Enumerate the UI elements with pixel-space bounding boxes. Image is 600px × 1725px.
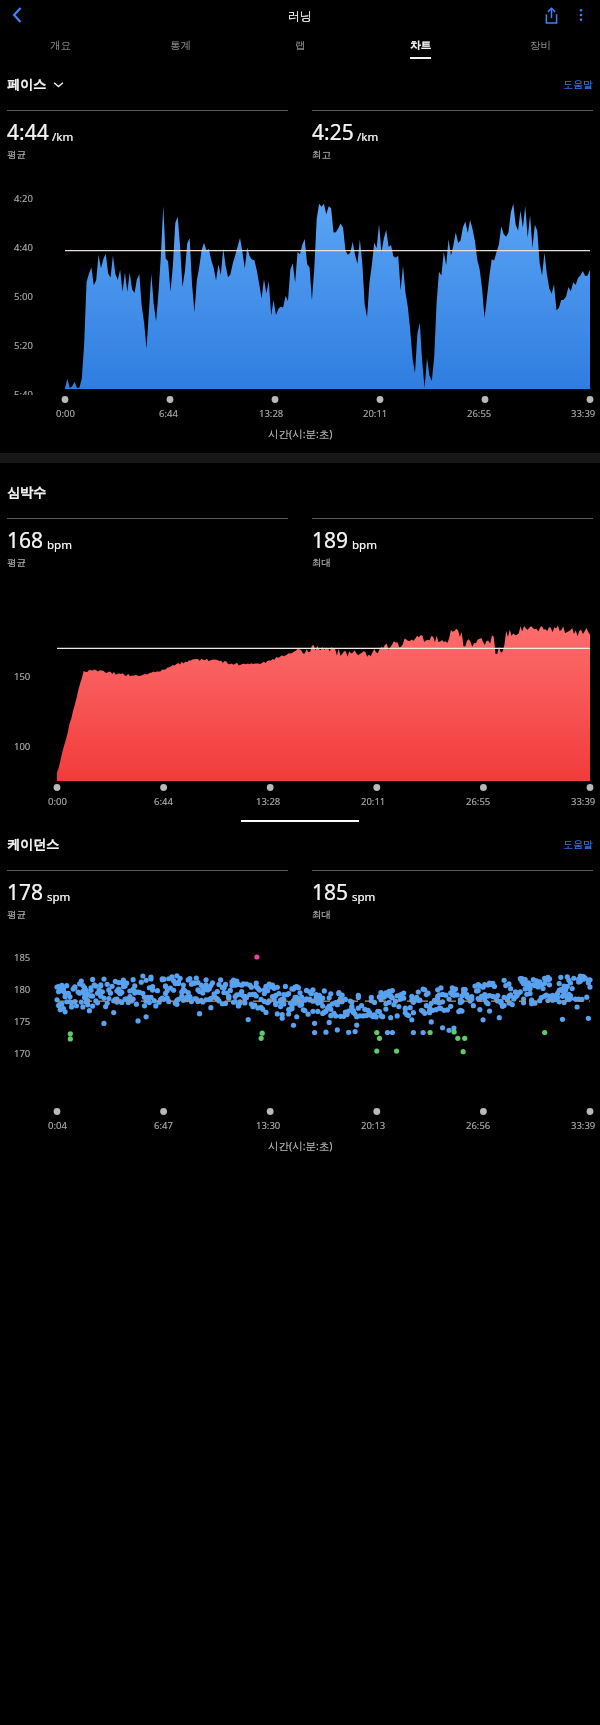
staticText: 도움말 [563,78,593,91]
staticText: 랩 [295,39,306,52]
staticText: 4:25 [312,118,354,147]
staticText: 20:11 [363,407,388,420]
staticText: bpm [352,537,377,553]
button[interactable]: 장비 [480,30,600,67]
staticText: 최대 [312,909,331,921]
staticText: 5:00 [14,290,33,303]
staticText: 26:56 [466,1119,491,1132]
staticText: /km [52,129,74,145]
staticText: 최고 [312,149,331,161]
staticText: 170 [14,1047,31,1060]
button[interactable]: 심박수 [7,484,46,500]
staticText: 통계 [170,39,191,52]
staticText: 러닝 [288,8,312,23]
staticText: 차트 [410,39,431,52]
staticText: spm [47,889,71,905]
staticText: 168 [7,526,44,555]
staticText: 4:40 [14,241,33,254]
button[interactable]: 도움말 [563,838,593,851]
staticText: 33:39 [571,795,596,808]
button[interactable]: 랩 [240,30,360,67]
staticText: 100 [14,740,31,753]
staticText: 180 [14,983,31,996]
button[interactable]: Back [4,1,32,29]
staticText: 33:39 [571,407,596,420]
staticText: 4:44 [7,118,49,147]
staticText: 185 [14,951,31,964]
staticText: 13:30 [256,1119,281,1132]
staticText: 20:11 [361,795,386,808]
button[interactable]: 페이스 [7,76,64,92]
staticText: 평균 [7,557,26,569]
staticText: 개요 [50,39,71,52]
staticText: 심박수 [7,484,46,500]
staticText: 평균 [7,149,26,161]
staticText: 장비 [530,39,551,52]
staticText: 6:44 [154,795,173,808]
button[interactable]: 케이던스 [7,836,59,852]
staticText: 13:28 [259,407,284,420]
button[interactable]: 도움말 [563,78,593,91]
staticText: 33:39 [571,1119,596,1132]
staticText: bpm [47,537,72,553]
staticText: spm [352,889,376,905]
staticText: 189 [312,526,349,555]
staticText: 평균 [7,909,26,921]
staticText: 최대 [312,557,331,569]
staticText: 26:55 [466,795,491,808]
staticText: 도움말 [563,838,593,851]
staticText: 26:55 [467,407,492,420]
staticText: 5:40 [14,388,33,395]
staticText: 185 [312,878,349,907]
staticText: 시간(시:분:초) [268,427,333,441]
staticText: 케이던스 [7,836,59,852]
staticText: 시간(시:분:초) [268,1139,333,1153]
staticText: 0:00 [48,795,67,808]
button[interactable]: 개요 [0,30,120,67]
button[interactable]: More options [566,0,596,30]
staticText: 페이스 [7,76,46,92]
staticText: /km [357,129,379,145]
staticText: 150 [14,670,31,683]
staticText: 5:20 [14,339,33,352]
staticText: 175 [14,1015,31,1028]
staticText: 13:28 [256,795,281,808]
staticText: 4:20 [14,192,33,205]
staticText: 0:04 [48,1119,67,1132]
staticText: 0:00 [56,407,75,420]
staticText: 20:13 [361,1119,386,1132]
staticText: 6:47 [154,1119,173,1132]
button[interactable]: Share [536,0,566,30]
staticText: 178 [7,878,44,907]
button[interactable]: 차트 [360,30,480,67]
staticText: 6:44 [159,407,178,420]
button[interactable]: 통계 [120,30,240,67]
